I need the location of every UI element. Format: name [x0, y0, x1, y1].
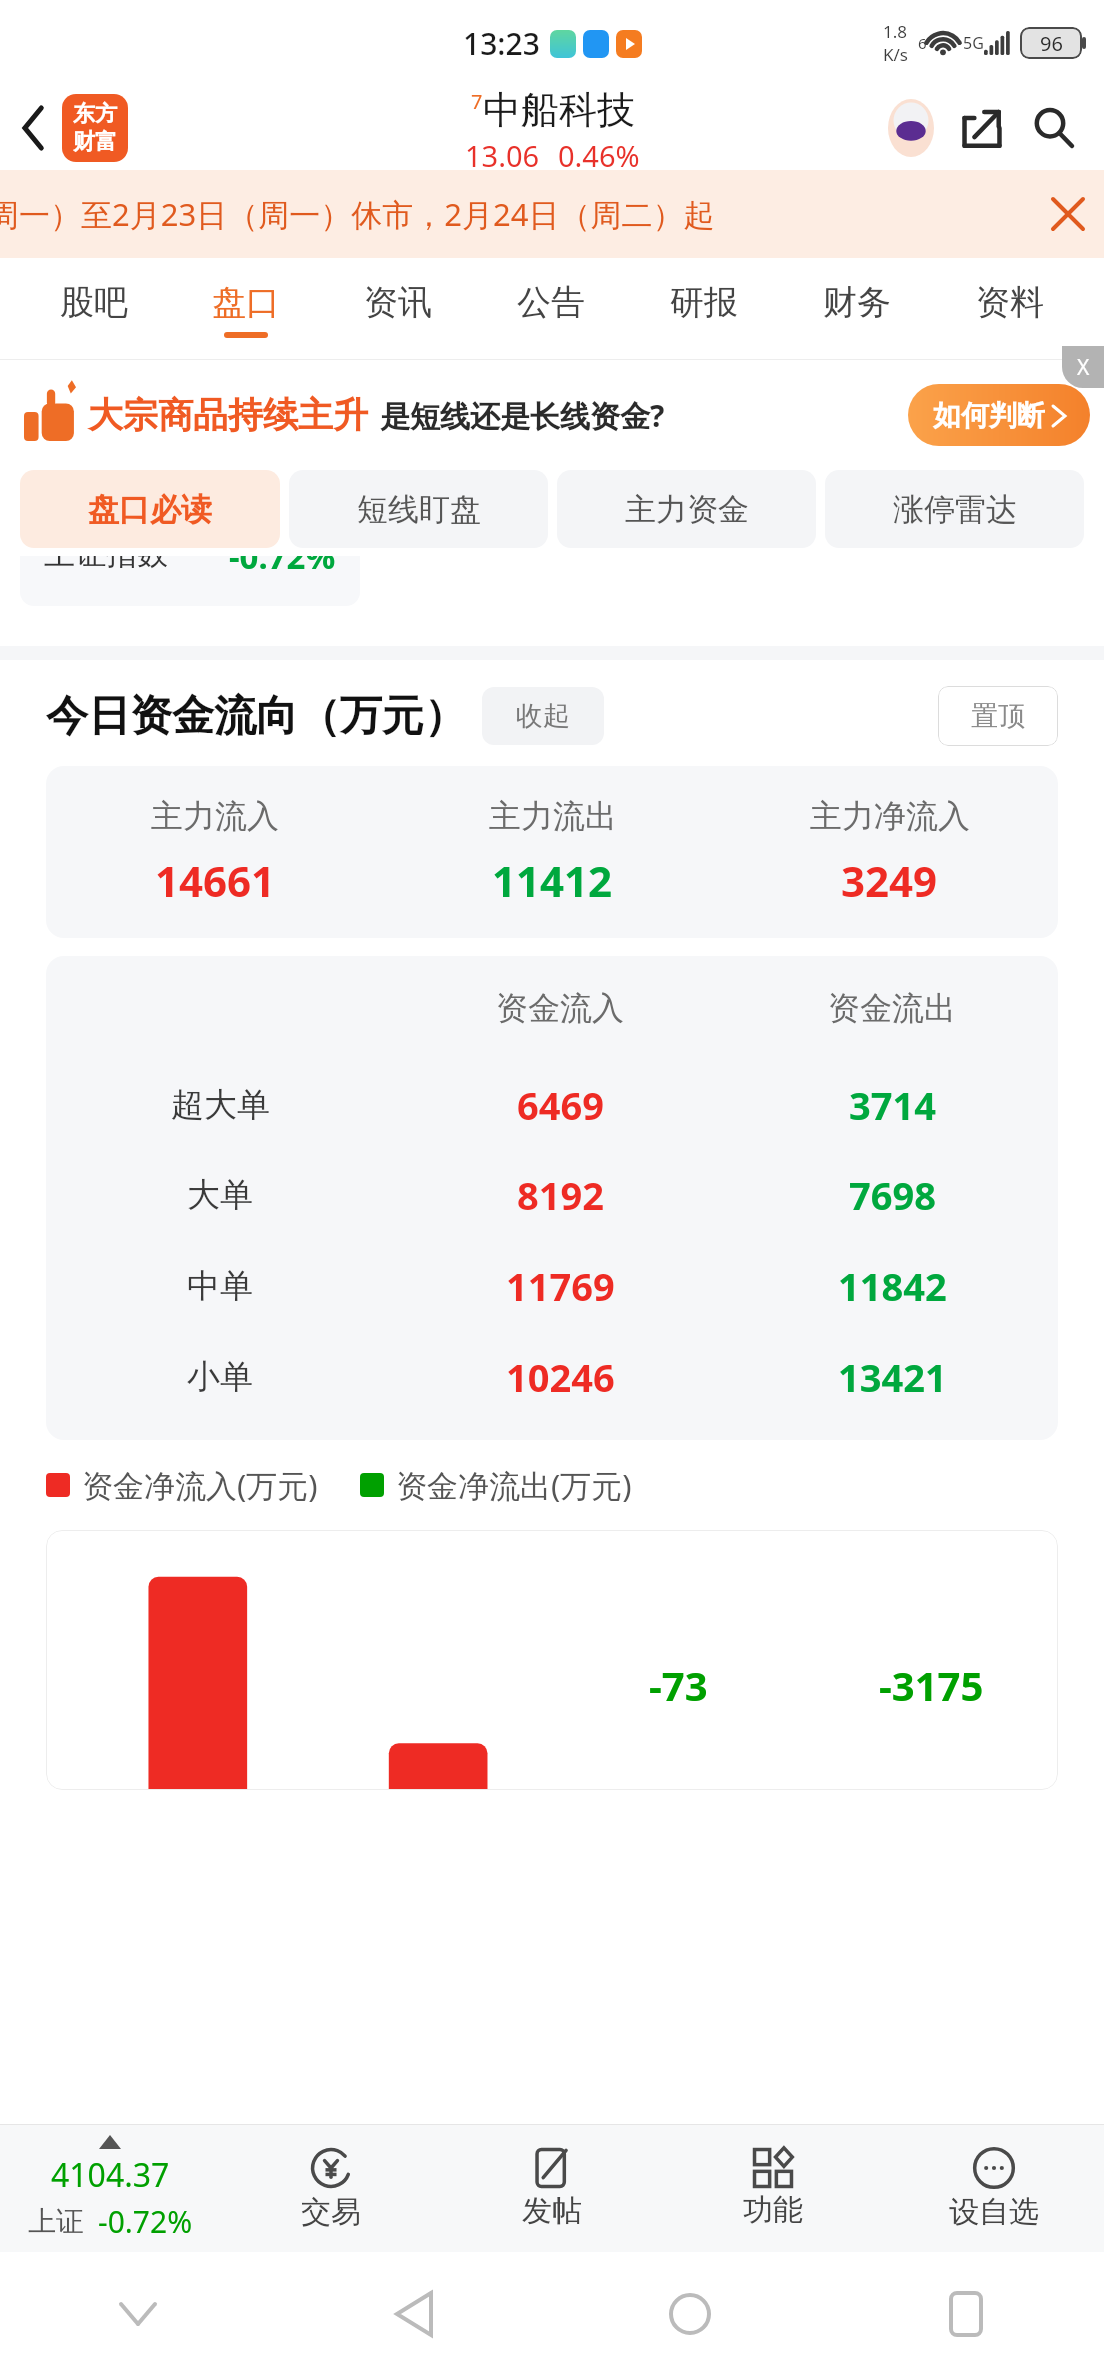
staticText: 资金净流入(万元) [82, 1464, 318, 1506]
button[interactable]: 资讯 [322, 258, 474, 360]
button[interactable]: East Money home [62, 94, 128, 162]
staticText: 7 [471, 88, 483, 115]
button[interactable]: 股吧 [18, 258, 170, 360]
button[interactable]: 资金流入 [46, 956, 1058, 1440]
button[interactable]: 4104.37 [0, 2124, 220, 2252]
staticText: 主力流出 [489, 796, 617, 836]
staticText: K/s [883, 43, 908, 66]
button[interactable]: 公告 [474, 258, 627, 360]
button[interactable]: 功能 [662, 2124, 883, 2252]
staticText: 6 [918, 33, 927, 53]
staticText: 10246 [506, 1351, 615, 1403]
staticText: 大单 [187, 1174, 253, 1216]
staticText: 交易 [301, 2193, 361, 2231]
staticText: X [1077, 353, 1090, 382]
staticText: 如何判断 [933, 398, 1045, 433]
staticText: 上证指数 [44, 556, 168, 573]
staticText: 财富 [73, 128, 117, 156]
button[interactable]: 主力流入 [46, 766, 1058, 938]
staticText: 盘口 [212, 281, 280, 324]
staticText: 功能 [743, 2191, 803, 2229]
staticText: 主力流入 [151, 796, 279, 836]
staticText: 中船科技 [483, 86, 635, 134]
staticText: 1.8 [883, 20, 908, 43]
staticText: 中单 [187, 1265, 253, 1307]
staticText: 6469 [517, 1079, 604, 1131]
staticText: 短线盯盘 [357, 490, 481, 529]
staticText: 置顶 [971, 699, 1025, 733]
button[interactable]: -73 [46, 1530, 1058, 1790]
staticText: 14661 [155, 852, 276, 909]
staticText: 股吧 [60, 281, 128, 324]
button[interactable]: Search [1018, 92, 1090, 164]
staticText: 收起 [516, 699, 570, 733]
staticText: 小单 [187, 1356, 253, 1398]
button[interactable]: Back [6, 100, 62, 156]
staticText: 11769 [506, 1260, 615, 1312]
button[interactable]: 资料 [933, 258, 1086, 360]
staticText: 资金流出 [828, 988, 956, 1028]
staticText: 设自选 [949, 2193, 1039, 2231]
staticText: 8192 [517, 1169, 604, 1221]
button[interactable]: 盘口必读 [20, 470, 280, 548]
staticText: 资料 [976, 281, 1044, 324]
button[interactable]: 涨停雷达 [825, 470, 1084, 548]
button[interactable]: 7 [465, 86, 640, 170]
staticText: 周一）至2月23日（周一）休市，2月24日（周二）起 [0, 193, 715, 235]
staticText: 0.46% [558, 136, 640, 170]
button[interactable]: 设自选 [883, 2124, 1104, 2252]
staticText: 涨停雷达 [893, 490, 1017, 529]
staticText: 上证 [28, 2204, 84, 2239]
staticText: 公告 [517, 281, 585, 324]
staticText: 5G [963, 32, 984, 54]
staticText: 发帖 [522, 2192, 582, 2230]
staticText: 3249 [841, 852, 938, 909]
staticText: 盘口必读 [88, 490, 212, 529]
staticText: 研报 [670, 281, 738, 324]
staticText: 4104.37 [51, 2153, 170, 2197]
staticText: 资金净流出(万元) [396, 1464, 632, 1506]
staticText: 超大单 [171, 1084, 270, 1126]
staticText: 13:23 [463, 23, 540, 64]
button[interactable]: Close ad [1062, 346, 1104, 388]
staticText: 资讯 [364, 281, 432, 324]
staticText: -73 [649, 1658, 708, 1712]
button[interactable]: 发帖 [441, 2124, 662, 2252]
button[interactable]: Share [946, 92, 1018, 164]
staticText: 是短线还是长线资金? [380, 395, 665, 436]
staticText: -0.72% [229, 556, 336, 579]
staticText: 今日资金流向（万元） [46, 690, 466, 743]
staticText: 11842 [838, 1260, 947, 1312]
staticText: 3714 [849, 1079, 936, 1131]
button[interactable]: 交易 [220, 2124, 441, 2252]
button[interactable]: 研报 [627, 258, 780, 360]
staticText: 财务 [823, 281, 891, 324]
staticText: -0.72% [98, 2201, 193, 2242]
button[interactable]: 盘口 [170, 258, 322, 360]
button[interactable]: 主力资金 [557, 470, 816, 548]
staticText: 96 [1040, 30, 1063, 57]
staticText: 大宗商品持续主升 [88, 393, 368, 437]
staticText: -3175 [879, 1658, 984, 1712]
button[interactable]: 财务 [780, 258, 933, 360]
staticText: 7698 [849, 1169, 936, 1221]
button[interactable]: AI assistant [876, 93, 946, 163]
button[interactable]: 上证指数 [20, 556, 360, 606]
button[interactable]: 短线盯盘 [289, 470, 548, 548]
button[interactable]: Close notice [1032, 178, 1104, 250]
staticText: 主力资金 [625, 490, 749, 529]
button[interactable]: 置顶 [938, 686, 1058, 746]
staticText: 13421 [838, 1351, 947, 1403]
staticText: 资金流入 [496, 988, 624, 1028]
staticText: 11412 [492, 852, 613, 909]
staticText: 东方 [73, 100, 117, 128]
staticText: 13.06 [465, 136, 540, 170]
button[interactable]: 收起 [482, 687, 604, 745]
staticText: 主力净流入 [810, 796, 970, 836]
button[interactable]: 如何判断 [908, 384, 1090, 446]
